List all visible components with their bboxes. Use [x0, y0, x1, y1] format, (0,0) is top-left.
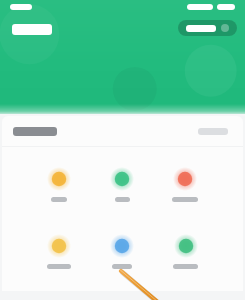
button[interactable]: Shortcut	[110, 163, 134, 206]
button[interactable]: Balance chip	[178, 20, 237, 36]
button[interactable]: Shortcut	[173, 230, 198, 273]
button[interactable]: Section title	[13, 127, 57, 136]
button[interactable]: Shortcut	[110, 230, 134, 273]
button[interactable]: More	[194, 124, 232, 139]
button[interactable]: Shortcut	[47, 163, 71, 206]
button[interactable]: Shortcut	[47, 230, 71, 273]
button[interactable]: Shortcut	[172, 163, 198, 206]
button[interactable]: Account title	[12, 24, 52, 35]
